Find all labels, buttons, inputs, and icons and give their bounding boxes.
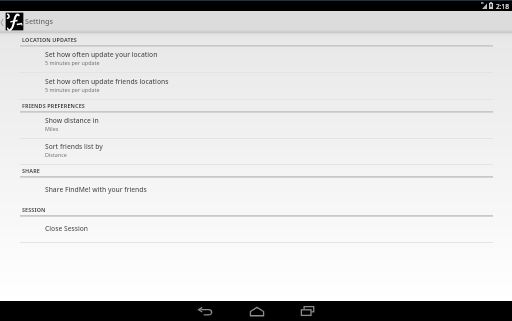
button[interactable]: Recents <box>282 301 333 321</box>
staticText: LOCATION UPDATES <box>22 36 77 43</box>
button[interactable]: Show distance in <box>0 111 512 138</box>
staticText: SHARE <box>22 167 40 174</box>
staticText: Miles <box>45 125 59 132</box>
staticText: Distance <box>45 151 67 158</box>
staticText: Set how often update your location <box>45 50 158 59</box>
staticText: SESSION <box>22 206 46 213</box>
staticText: Share FindMe! with your friends <box>45 185 147 194</box>
button[interactable]: Close Session <box>0 215 512 242</box>
button[interactable]: Back <box>180 301 231 321</box>
staticText: Settings <box>25 16 53 26</box>
button[interactable]: Set how often update friends locations <box>0 72 512 99</box>
staticText: Close Session <box>45 224 89 233</box>
button[interactable]: Up <box>0 11 512 33</box>
staticText: Show distance in <box>45 116 99 125</box>
staticText: Sort friends list by <box>45 142 103 151</box>
button[interactable]: Home <box>231 301 282 321</box>
staticText: 2:18 <box>496 2 510 11</box>
staticText: Set how often update friends locations <box>45 77 169 86</box>
button[interactable]: Sort friends list by <box>0 137 512 164</box>
staticText: 5 minutes per update <box>45 59 100 66</box>
button[interactable]: Set how often update your location <box>0 45 512 72</box>
staticText: FRIENDS PREFERENCES <box>22 102 85 109</box>
staticText: 5 minutes per update <box>45 86 100 93</box>
button[interactable]: Share FindMe! with your friends <box>0 176 512 203</box>
